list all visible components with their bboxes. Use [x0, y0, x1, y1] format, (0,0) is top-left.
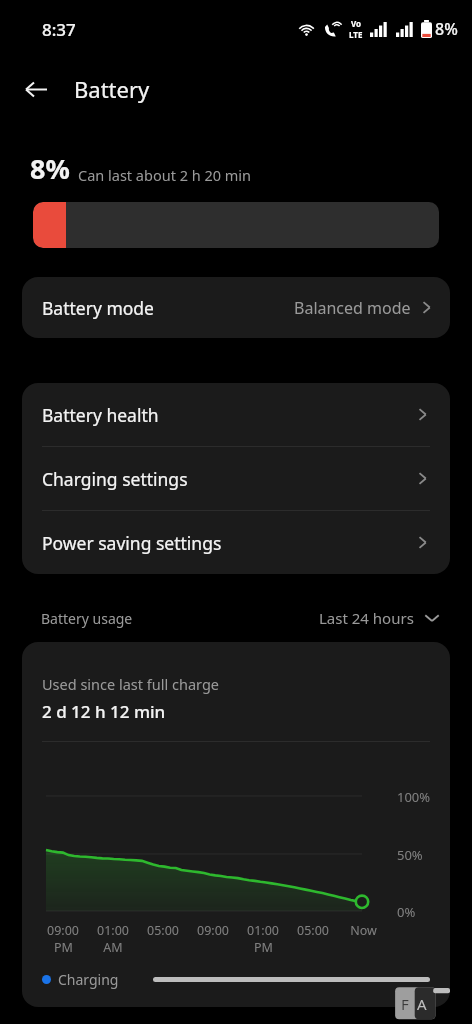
staticText: Charging [58, 970, 119, 989]
staticText: 05:00 [147, 922, 179, 939]
staticText: Battery usage [41, 609, 133, 628]
button[interactable]: Charging settings [22, 447, 450, 510]
staticText: 50% [397, 846, 423, 864]
staticText: PM [254, 939, 273, 956]
staticText: Vo [351, 18, 362, 29]
staticText: Can last about 2 h 20 min [78, 165, 252, 185]
staticText: Now [350, 922, 377, 939]
staticText: Battery health [42, 403, 159, 427]
staticText: Used since last full charge [42, 674, 219, 694]
staticText: LTE [349, 29, 363, 40]
staticText: 8:37 [42, 18, 76, 41]
staticText: Battery mode [42, 296, 154, 320]
staticText: Balanced mode [294, 297, 411, 319]
button[interactable]: Power saving settings [22, 511, 450, 574]
staticText: Battery [74, 74, 150, 104]
staticText: 09:00 [47, 922, 79, 939]
button[interactable]: Battery mode [22, 277, 450, 338]
staticText: Charging settings [42, 467, 188, 491]
staticText: 8% [30, 150, 70, 187]
staticText: Power saving settings [42, 531, 222, 555]
button[interactable]: Back [14, 67, 58, 111]
staticText: 01:00 [247, 922, 279, 939]
staticText: Last 24 hours [319, 608, 414, 628]
staticText: 8% [435, 18, 458, 40]
staticText: 05:00 [297, 922, 329, 939]
staticText: PM [54, 939, 73, 956]
staticText: 100% [397, 788, 431, 806]
staticText: A [417, 994, 427, 1014]
staticText: F [401, 994, 409, 1014]
staticText: 09:00 [197, 922, 229, 939]
button[interactable]: Font size [394, 984, 450, 1024]
button[interactable]: Battery health [22, 383, 450, 446]
button[interactable]: Last 24 hours [315, 606, 444, 630]
staticText: 2 d 12 h 12 min [42, 700, 166, 723]
staticText: 0% [397, 903, 416, 921]
staticText: 01:00 [97, 922, 129, 939]
staticText: AM [103, 939, 123, 956]
